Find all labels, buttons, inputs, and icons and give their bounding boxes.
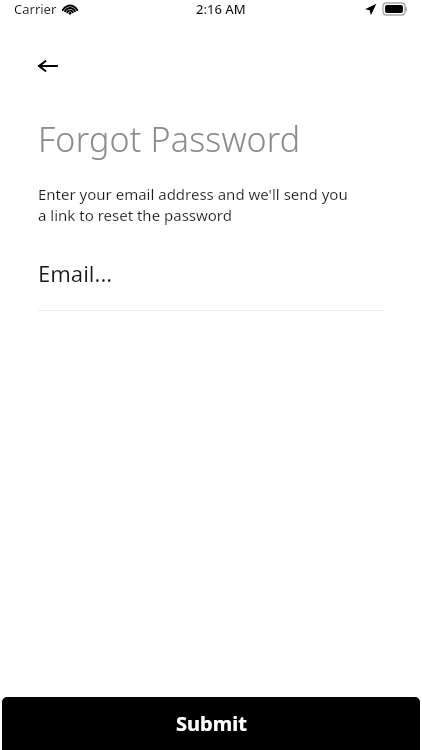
staticText: Forgot Password	[38, 116, 301, 162]
staticText: 2:16 AM	[196, 0, 246, 18]
staticText: Carrier	[14, 0, 57, 18]
staticText: Enter your email address and we'll send …	[38, 184, 348, 226]
button[interactable]: Email...	[0, 258, 422, 311]
staticText: Email...	[38, 258, 113, 288]
button[interactable]: Back	[30, 48, 66, 84]
staticText: Submit	[176, 710, 247, 737]
button[interactable]: Submit	[2, 697, 420, 750]
